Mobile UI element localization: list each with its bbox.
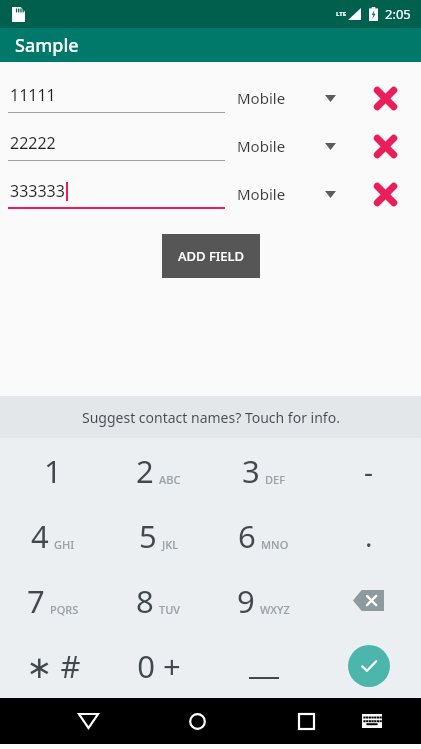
staticText: 4 [31, 515, 49, 557]
button[interactable]: Change keyboard [349, 698, 395, 744]
staticText: 9 [237, 580, 255, 622]
button[interactable]: 9 [211, 568, 316, 633]
staticText: . [365, 517, 373, 555]
button[interactable]: Mobile [225, 170, 350, 218]
button[interactable]: Mobile [225, 74, 350, 122]
button[interactable]: 1 [0, 438, 106, 503]
button[interactable]: 11111 [0, 74, 225, 122]
staticText: 333333 [10, 180, 65, 202]
button[interactable]: Space [211, 633, 316, 698]
button[interactable]: 22222 [0, 122, 225, 170]
button[interactable]: . [316, 503, 421, 568]
staticText: 0 + [137, 645, 181, 687]
button[interactable]: 2 [106, 438, 211, 503]
staticText: MNO [261, 537, 289, 552]
staticText: 2:05 [385, 5, 411, 23]
button[interactable]: Enter [316, 633, 421, 698]
staticText: LTE [336, 10, 347, 18]
button[interactable]: Home [174, 698, 220, 744]
button[interactable]: Delete field [350, 170, 421, 218]
staticText: WXYZ [260, 602, 290, 617]
button[interactable]: 5 [106, 503, 211, 568]
button[interactable]: 3 [211, 438, 316, 503]
button[interactable]: Delete field [350, 74, 421, 122]
staticText: 7 [27, 580, 45, 622]
staticText: ∗ # [26, 645, 81, 687]
button[interactable]: 8 [106, 568, 211, 633]
button[interactable]: Delete field [350, 122, 421, 170]
button[interactable]: Suggest contact names? Touch for info. [0, 396, 421, 438]
button[interactable]: 6 [211, 503, 316, 568]
staticText: ADD FIELD [178, 247, 245, 265]
staticText: DEF [265, 472, 285, 487]
button[interactable]: 7 [0, 568, 106, 633]
button[interactable]: Recent apps [283, 698, 329, 744]
button[interactable]: Hide keyboard [65, 698, 111, 744]
staticText: Sample [15, 33, 79, 58]
staticText: GHI [54, 537, 75, 552]
button[interactable]: Mobile [225, 122, 350, 170]
staticText: PQRS [50, 602, 79, 617]
staticText: Mobile [237, 136, 286, 156]
staticText: Suggest contact names? Touch for info. [82, 408, 340, 427]
button[interactable]: - [316, 438, 421, 503]
button[interactable]: 4 [0, 503, 106, 568]
button[interactable]: 0 + [106, 633, 211, 698]
staticText: 6 [238, 515, 256, 557]
staticText: - [364, 452, 374, 490]
button[interactable]: ADD FIELD [162, 234, 260, 278]
staticText: 3 [242, 450, 260, 492]
staticText: 1 [44, 450, 62, 492]
staticText: 11111 [10, 84, 56, 106]
staticText: 8 [136, 580, 154, 622]
staticText: 22222 [10, 132, 56, 154]
button[interactable]: Backspace [316, 568, 421, 633]
staticText: Mobile [237, 88, 286, 108]
staticText: 2 [136, 450, 154, 492]
staticText: 5 [139, 515, 157, 557]
button[interactable]: 333333 [0, 170, 225, 218]
staticText: TUV [159, 602, 181, 617]
staticText: ABC [159, 472, 181, 487]
button[interactable]: ∗ # [0, 633, 106, 698]
staticText: Mobile [237, 184, 286, 204]
staticText: JKL [162, 537, 179, 552]
